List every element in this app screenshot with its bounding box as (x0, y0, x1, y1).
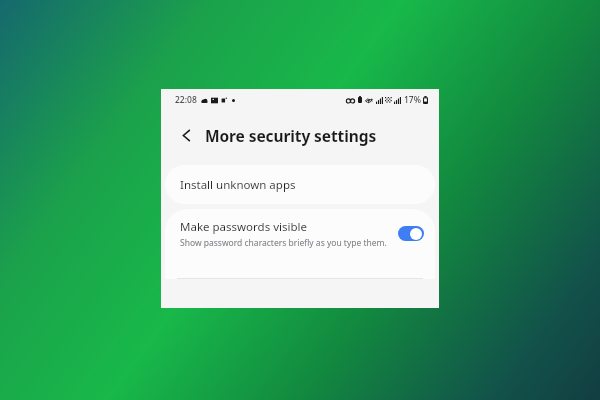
staticText: Show password characters briefly as you … (180, 237, 387, 249)
staticText: 17% (404, 94, 421, 106)
staticText: Install unknown apps (180, 177, 296, 193)
button[interactable]: Make passwords visible toggle, on (398, 226, 424, 241)
button[interactable]: Navigate up (176, 125, 196, 145)
button[interactable]: Install unknown apps (165, 165, 435, 204)
staticText: Make passwords visible (180, 219, 307, 235)
staticText: More security settings (205, 125, 377, 146)
staticText: 22:08 (175, 94, 197, 106)
